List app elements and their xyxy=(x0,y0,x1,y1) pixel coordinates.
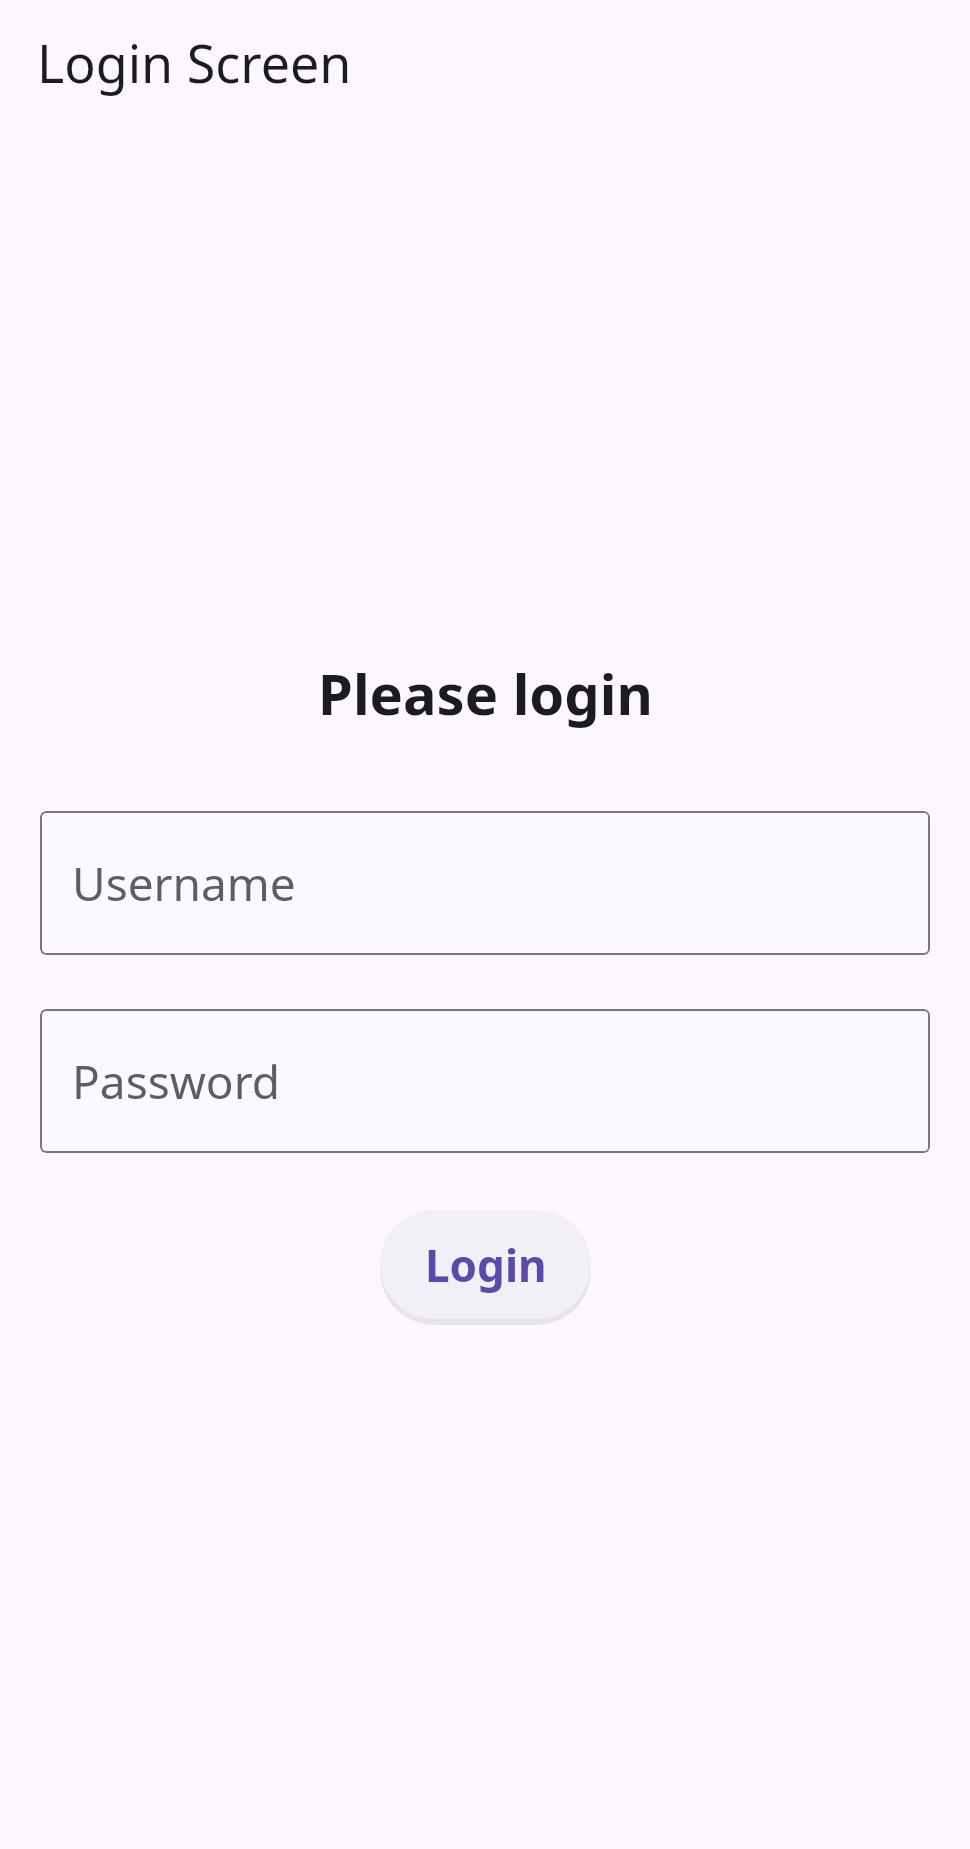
staticText: Username xyxy=(72,852,296,915)
button[interactable]: Username xyxy=(40,811,930,955)
staticText: Please login xyxy=(318,655,653,731)
button[interactable]: Password xyxy=(40,1009,930,1153)
button[interactable]: Login xyxy=(380,1210,591,1319)
staticText: Login Screen xyxy=(37,27,352,98)
staticText: Login xyxy=(425,1235,547,1295)
staticText: Password xyxy=(72,1050,281,1113)
